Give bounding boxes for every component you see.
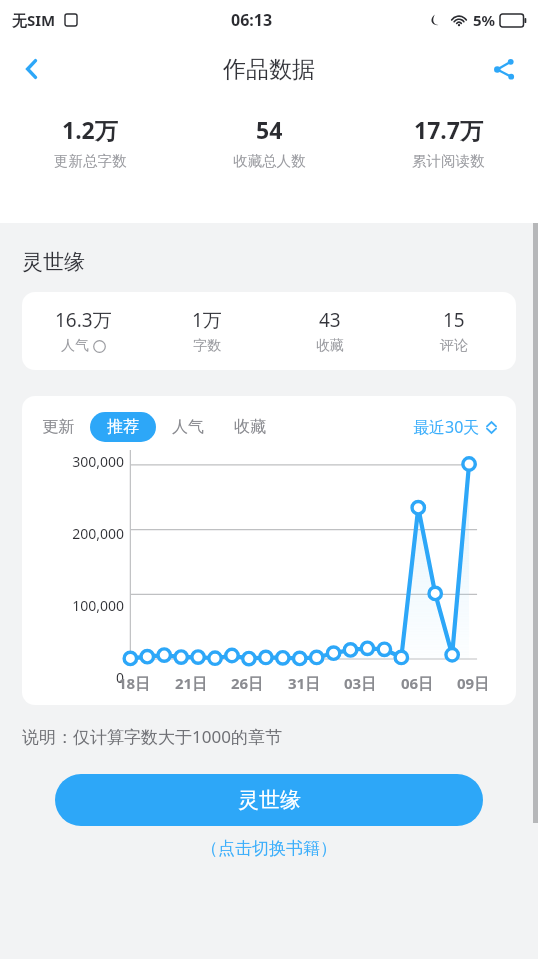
- staticText: 31日: [288, 673, 321, 693]
- button[interactable]: 43: [268, 307, 392, 355]
- staticText: 收藏总人数: [233, 152, 306, 170]
- staticText: 1.2万: [62, 114, 118, 145]
- staticText: 06:13: [231, 9, 273, 31]
- button[interactable]: 更新: [36, 412, 80, 442]
- staticText: 推荐: [107, 417, 139, 437]
- staticText: 更新总字数: [54, 152, 127, 170]
- staticText: 人气: [61, 337, 89, 355]
- staticText: 1万: [192, 307, 222, 333]
- staticText: 100,000: [72, 596, 124, 615]
- button[interactable]: 1.2万: [0, 114, 180, 170]
- staticText: 最近30天: [413, 416, 480, 438]
- staticText: 43: [319, 307, 341, 333]
- staticText: 16.3万: [55, 307, 112, 333]
- staticText: 收藏: [316, 337, 344, 355]
- staticText: （点击切换书籍）: [201, 838, 337, 859]
- staticText: 灵世缘: [22, 249, 85, 275]
- button[interactable]: 17.7万: [359, 114, 538, 170]
- staticText: 18日: [118, 673, 151, 693]
- button[interactable]: Back: [8, 45, 56, 93]
- button[interactable]: 16.3万: [22, 307, 145, 355]
- staticText: 26日: [231, 673, 264, 693]
- staticText: 无SIM: [12, 10, 56, 30]
- staticText: 0: [115, 668, 124, 687]
- staticText: 灵世缘: [238, 787, 301, 813]
- staticText: 06日: [401, 673, 434, 693]
- staticText: 收藏: [234, 417, 266, 437]
- staticText: 15: [443, 307, 465, 333]
- button[interactable]: 1万: [145, 307, 268, 355]
- button[interactable]: 15: [392, 307, 516, 355]
- staticText: 03日: [344, 673, 377, 693]
- staticText: 作品数据: [223, 55, 315, 84]
- staticText: 更新: [42, 417, 74, 437]
- staticText: 21日: [175, 673, 208, 693]
- button[interactable]: 灵世缘: [55, 774, 483, 826]
- button[interactable]: （点击切换书籍）: [197, 834, 341, 863]
- button[interactable]: 人气: [166, 412, 210, 442]
- button[interactable]: 16.3万: [22, 292, 516, 370]
- staticText: 字数: [193, 337, 221, 355]
- button[interactable]: 最近30天: [409, 412, 502, 442]
- button[interactable]: 收藏: [228, 412, 272, 442]
- staticText: 09日: [457, 673, 490, 693]
- staticText: 200,000: [72, 524, 124, 543]
- staticText: 17.7万: [414, 114, 483, 145]
- button[interactable]: 推荐: [90, 412, 156, 442]
- button[interactable]: 54: [180, 114, 359, 170]
- staticText: 人气: [172, 417, 204, 437]
- staticText: 300,000: [72, 452, 124, 471]
- staticText: 5%: [473, 10, 496, 30]
- staticText: 评论: [440, 337, 468, 355]
- staticText: 累计阅读数: [412, 152, 485, 170]
- staticText: 说明：仅计算字数大于1000的章节: [22, 725, 282, 748]
- staticText: 54: [256, 114, 283, 145]
- button[interactable]: Share: [480, 45, 528, 93]
